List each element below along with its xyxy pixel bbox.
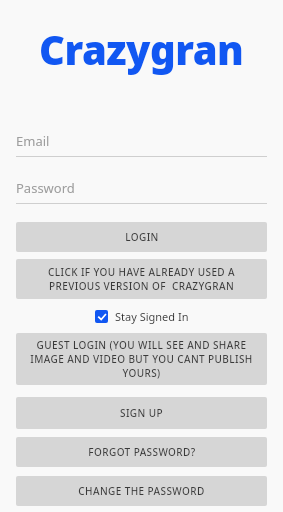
button[interactable]: CHANGE THE PASSWORD — [16, 476, 267, 506]
staticText: GUEST LOGIN (YOU WILL SEE AND SHARE IMAG… — [24, 338, 259, 380]
button[interactable]: CLICK IF YOU HAVE ALREADY USED A PREVIOU… — [16, 259, 267, 299]
staticText: CHANGE THE PASSWORD — [78, 484, 205, 498]
staticText: Password — [16, 179, 75, 197]
staticText: CLICK IF YOU HAVE ALREADY USED A PREVIOU… — [24, 265, 259, 293]
other: Stay Signed In checkbox — [95, 310, 108, 323]
button[interactable]: FORGOT PASSWORD? — [16, 437, 267, 467]
button[interactable]: GUEST LOGIN (YOU WILL SEE AND SHARE IMAG… — [16, 333, 267, 385]
button[interactable]: LOGIN — [16, 222, 267, 252]
staticText: LOGIN — [125, 230, 159, 244]
staticText: SIGN UP — [120, 406, 163, 420]
staticText: Stay Signed In — [115, 309, 189, 324]
staticText: FORGOT PASSWORD? — [88, 445, 196, 459]
button[interactable]: SIGN UP — [16, 397, 267, 429]
staticText: Crazygran — [39, 22, 244, 76]
button[interactable]: Stay Signed In checkbox — [93, 307, 191, 326]
staticText: Email — [16, 132, 50, 150]
